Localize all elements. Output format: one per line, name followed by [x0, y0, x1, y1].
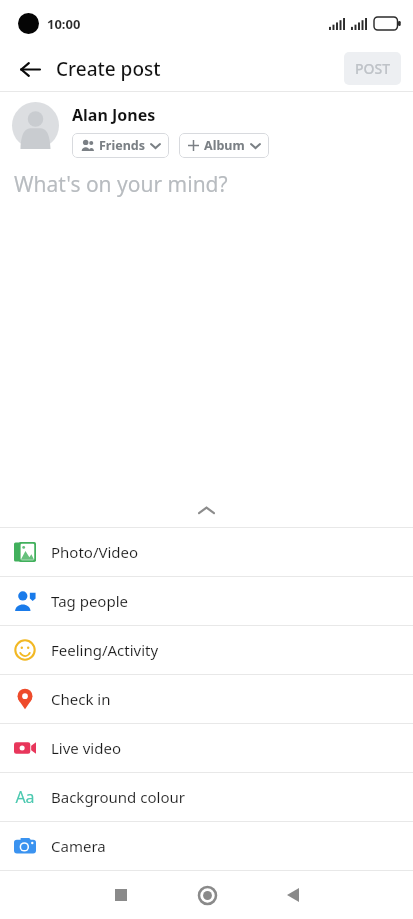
staticText: Create post — [56, 56, 161, 82]
staticText: Live video — [51, 738, 121, 758]
button[interactable]: Album — [179, 133, 269, 158]
staticText: Photo/Video — [51, 542, 139, 562]
button[interactable]: Tag people — [0, 577, 413, 625]
button[interactable]: Expand options — [0, 493, 413, 527]
button[interactable]: Recent apps — [97, 871, 145, 919]
staticText: Camera — [51, 836, 106, 856]
staticText: Tag people — [51, 591, 128, 611]
staticText: Alan Jones — [72, 104, 156, 126]
button[interactable]: Live video — [0, 724, 413, 772]
staticText: Friends — [99, 137, 145, 154]
button[interactable]: Back — [10, 49, 50, 89]
staticText: Album — [204, 137, 245, 154]
button[interactable]: Photo/Video — [0, 528, 413, 576]
staticText: Check in — [51, 689, 111, 709]
staticText: What's on your mind? — [14, 170, 228, 199]
button[interactable]: Camera — [0, 822, 413, 870]
staticText: Aa — [15, 786, 35, 808]
staticText: Background colour — [51, 787, 185, 807]
button[interactable]: Friends — [72, 133, 169, 158]
button[interactable]: Feeling/Activity — [0, 626, 413, 674]
staticText: 10:00 — [47, 15, 81, 33]
button[interactable]: Home — [183, 871, 231, 919]
button[interactable]: Aa — [0, 773, 413, 821]
staticText: Feeling/Activity — [51, 640, 159, 660]
staticText: POST — [355, 59, 391, 78]
button[interactable]: Back — [269, 871, 317, 919]
button[interactable]: POST — [344, 52, 401, 85]
button[interactable]: Check in — [0, 675, 413, 723]
button[interactable]: GIF — [0, 871, 413, 919]
